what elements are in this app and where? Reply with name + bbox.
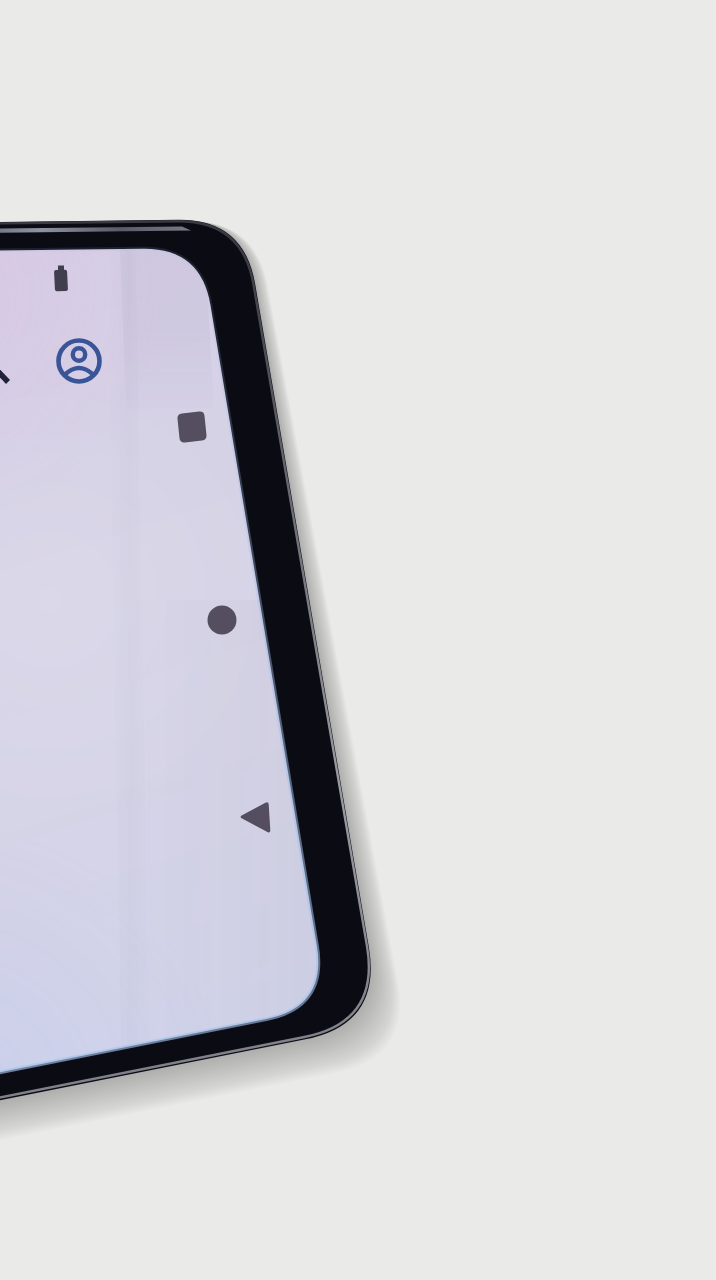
button[interactable]: Recent apps: [165, 398, 219, 454]
button[interactable]: Back: [228, 789, 284, 847]
button[interactable]: Account: [44, 330, 114, 394]
button[interactable]: Home: [194, 592, 252, 650]
